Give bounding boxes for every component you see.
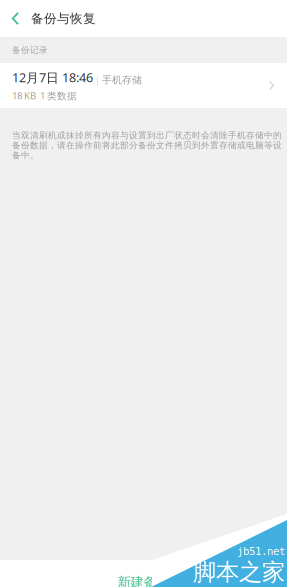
staticText: 18 KB 1 类数据 [12,89,77,102]
staticText: | [93,74,102,86]
staticText: 手机存储 [102,74,142,86]
staticText: 新建备份 [117,574,169,587]
button[interactable]: 新建备份 [0,560,287,587]
button[interactable]: Back [0,0,31,37]
staticText: jb51.net [237,545,285,558]
staticText: 备份与恢复 [31,11,96,26]
button[interactable]: 12月7日 18:46 [0,63,287,108]
staticText: 脚本之家 [193,558,285,587]
staticText: 12月7日 18:46 [12,69,93,86]
staticText: 当双清刷机或抹掉所有内容与设置到出厂状态时会清除手机存储中的备份数据，请在操作前… [12,130,282,161]
staticText: 备份记录 [12,44,48,55]
